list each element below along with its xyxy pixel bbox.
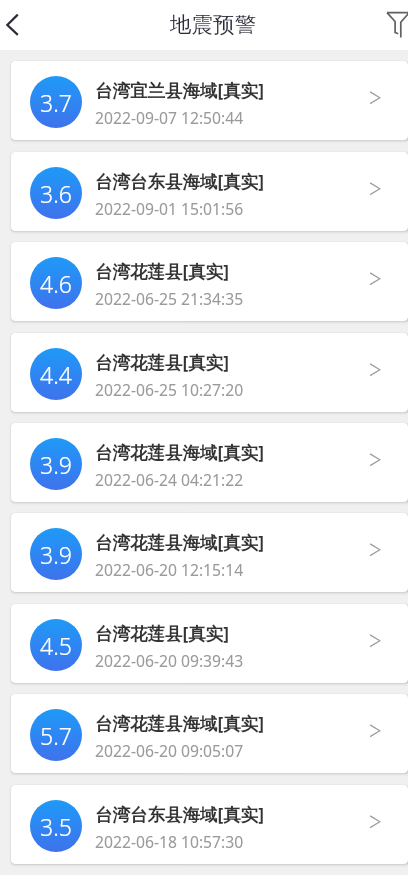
- button[interactable]: 3.7: [11, 61, 408, 140]
- button[interactable]: 4.4: [11, 333, 408, 412]
- staticText: 台湾花莲县海域[真实]: [95, 711, 265, 735]
- staticText: 台湾花莲县海域[真实]: [95, 440, 265, 464]
- staticText: 台湾台东县海域[真实]: [95, 802, 265, 826]
- staticText: 2022-06-25 10:27:20: [95, 379, 244, 400]
- staticText: 2022-09-01 15:01:56: [95, 198, 244, 219]
- staticText: 5.7: [40, 720, 72, 751]
- staticText: 3.6: [40, 178, 72, 209]
- button[interactable]: 4.5: [11, 604, 408, 683]
- staticText: 3.5: [40, 811, 72, 842]
- staticText: 4.4: [40, 359, 72, 390]
- button[interactable]: 3.5: [11, 785, 408, 864]
- staticText: 2022-06-20 09:39:43: [95, 650, 244, 671]
- staticText: 3.9: [40, 449, 72, 480]
- staticText: 3.9: [40, 539, 72, 570]
- button[interactable]: Filter: [386, 3, 408, 47]
- staticText: 台湾花莲县[真实]: [95, 621, 230, 645]
- staticText: 台湾花莲县[真实]: [95, 259, 230, 283]
- staticText: 2022-09-07 12:50:44: [95, 107, 244, 128]
- button[interactable]: Back: [0, 2, 35, 46]
- staticText: 2022-06-24 04:21:22: [95, 469, 244, 490]
- button[interactable]: 3.9: [11, 423, 408, 502]
- button[interactable]: 4.6: [11, 242, 408, 321]
- staticText: 台湾宜兰县海域[真实]: [95, 78, 265, 102]
- button[interactable]: 3.9: [11, 513, 408, 592]
- staticText: 3.7: [40, 87, 72, 118]
- button[interactable]: 3.6: [11, 152, 408, 231]
- staticText: 2022-06-18 10:57:30: [95, 831, 244, 852]
- staticText: 台湾花莲县海域[真实]: [95, 530, 265, 554]
- staticText: 台湾台东县海域[真实]: [95, 169, 265, 193]
- staticText: 4.6: [40, 268, 72, 299]
- staticText: 4.5: [40, 630, 72, 661]
- staticText: 2022-06-20 12:15:14: [95, 559, 244, 580]
- staticText: 2022-06-20 09:05:07: [95, 740, 244, 761]
- button[interactable]: 5.7: [11, 694, 408, 773]
- staticText: 地震预警: [170, 11, 256, 38]
- staticText: 台湾花莲县[真实]: [95, 350, 230, 374]
- staticText: 2022-06-25 21:34:35: [95, 288, 244, 309]
